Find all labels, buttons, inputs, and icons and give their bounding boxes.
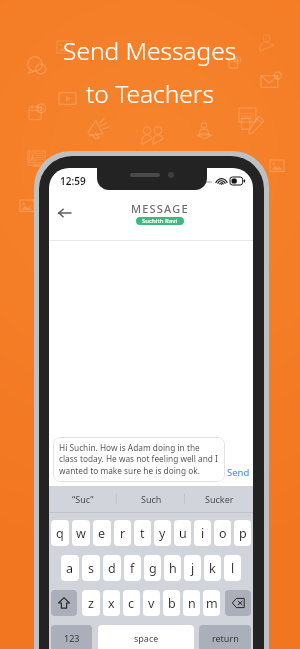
- button[interactable]: i: [194, 520, 211, 546]
- staticText: q: [56, 525, 64, 542]
- button[interactable]: Shift: [51, 590, 77, 616]
- staticText: b: [168, 595, 176, 612]
- staticText: y: [159, 525, 166, 542]
- staticText: Hi Suchin. How is Adam doing in the clas…: [59, 442, 218, 477]
- staticText: to Teachers: [86, 77, 214, 110]
- button[interactable]: z: [82, 590, 100, 616]
- button[interactable]: l: [224, 555, 241, 581]
- button[interactable]: a: [61, 555, 79, 581]
- button[interactable]: r: [114, 520, 131, 546]
- staticText: 123: [64, 632, 80, 644]
- button[interactable]: Send: [225, 466, 251, 479]
- button[interactable]: s: [82, 555, 100, 581]
- staticText: s: [88, 560, 94, 577]
- staticText: return: [212, 632, 239, 644]
- staticText: n: [188, 595, 196, 612]
- button[interactable]: 123: [51, 625, 92, 649]
- staticText: MESSAGE: [131, 201, 189, 216]
- staticText: l: [231, 560, 235, 577]
- button[interactable]: Sucker: [185, 486, 253, 512]
- staticText: w: [76, 525, 86, 542]
- staticText: “Suc”: [72, 493, 94, 505]
- staticText: j: [191, 560, 195, 577]
- staticText: t: [140, 525, 145, 542]
- staticText: h: [169, 560, 177, 577]
- button[interactable]: k: [204, 555, 221, 581]
- button[interactable]: n: [183, 590, 200, 616]
- button[interactable]: v: [143, 590, 160, 616]
- staticText: v: [148, 595, 155, 612]
- button[interactable]: return: [199, 625, 251, 649]
- button[interactable]: f: [124, 555, 141, 581]
- staticText: p: [239, 525, 247, 542]
- button[interactable]: space: [98, 625, 194, 649]
- staticText: r: [120, 525, 126, 542]
- staticText: Send: [227, 466, 250, 479]
- staticText: z: [88, 595, 94, 612]
- button[interactable]: m: [203, 590, 220, 616]
- button[interactable]: j: [184, 555, 201, 581]
- button[interactable]: t: [134, 520, 151, 546]
- staticText: 12:59: [60, 174, 86, 188]
- button[interactable]: q: [51, 520, 69, 546]
- button[interactable]: x: [103, 590, 120, 616]
- button[interactable]: “Suc”: [49, 486, 117, 512]
- button[interactable]: y: [154, 520, 171, 546]
- button[interactable]: Such: [117, 486, 185, 512]
- button[interactable]: Hi Suchin. How is Adam doing in the clas…: [59, 442, 219, 477]
- button[interactable]: w: [72, 520, 90, 546]
- staticText: e: [98, 525, 106, 542]
- button[interactable]: p: [234, 520, 251, 546]
- button[interactable]: u: [174, 520, 191, 546]
- staticText: u: [179, 525, 187, 542]
- staticText: Sucker: [205, 493, 234, 505]
- staticText: Send Messages: [63, 34, 237, 67]
- button[interactable]: d: [103, 555, 121, 581]
- staticText: g: [149, 560, 157, 577]
- button[interactable]: Backspace: [225, 590, 251, 616]
- staticText: k: [209, 560, 216, 577]
- staticText: c: [128, 595, 135, 612]
- staticText: Suchith Ravi: [142, 217, 178, 225]
- staticText: d: [108, 560, 116, 577]
- button[interactable]: b: [163, 590, 180, 616]
- button[interactable]: h: [164, 555, 181, 581]
- staticText: m: [206, 595, 218, 612]
- button[interactable]: g: [144, 555, 161, 581]
- staticText: f: [130, 560, 135, 577]
- button[interactable]: e: [93, 520, 111, 546]
- staticText: i: [201, 525, 205, 542]
- staticText: o: [219, 525, 227, 542]
- staticText: space: [134, 632, 159, 644]
- button[interactable]: o: [214, 520, 231, 546]
- staticText: Such: [141, 493, 162, 505]
- button[interactable]: c: [123, 590, 140, 616]
- staticText: a: [66, 560, 74, 577]
- button[interactable]: Back: [49, 198, 79, 228]
- staticText: x: [108, 595, 115, 612]
